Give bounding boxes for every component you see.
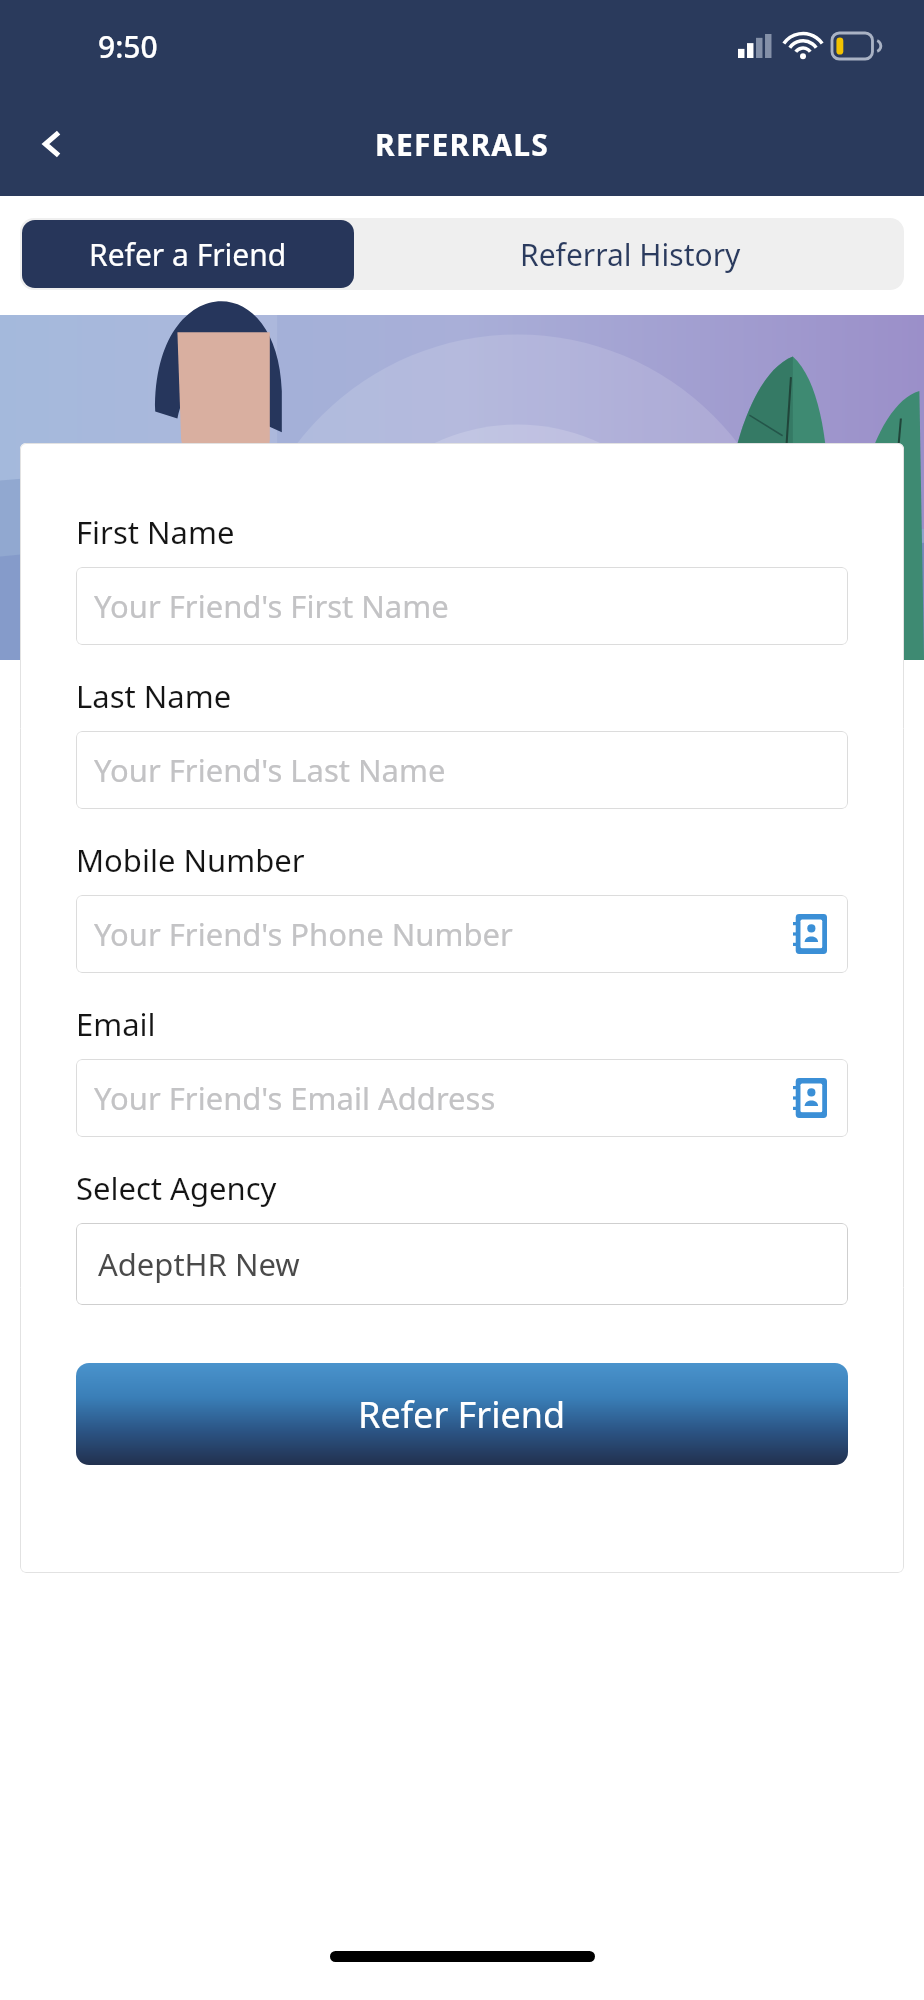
staticText: Mobile Number [76, 839, 305, 881]
button[interactable]: Refer a Friend [22, 220, 354, 288]
staticText: First Name [76, 511, 235, 553]
button[interactable]: Pick from contacts [788, 912, 832, 956]
button[interactable]: Refer Friend [76, 1363, 848, 1465]
button[interactable]: Your Friend's Phone Number [76, 895, 848, 973]
button[interactable]: Back [20, 112, 84, 176]
button[interactable]: Your Friend's First Name [76, 567, 848, 645]
staticText: Your Friend's Email Address [94, 1077, 496, 1119]
button[interactable]: AdeptHR New [76, 1223, 848, 1305]
button[interactable]: Your Friend's Email Address [76, 1059, 848, 1137]
staticText: 9:50 [98, 26, 158, 67]
staticText: AdeptHR New [98, 1243, 300, 1285]
staticText: Refer a Friend [89, 234, 287, 275]
staticText: Refer Friend [358, 1390, 566, 1439]
staticText: Referral History [520, 234, 741, 275]
button[interactable]: Pick from contacts [788, 1076, 832, 1120]
staticText: Select Agency [76, 1167, 277, 1209]
staticText: Email [76, 1003, 156, 1045]
staticText: Your Friend's Last Name [94, 749, 446, 791]
button[interactable]: Referral History [356, 218, 904, 290]
staticText: Last Name [76, 675, 232, 717]
staticText: REFERRALS [375, 124, 549, 165]
staticText: Your Friend's First Name [94, 585, 449, 627]
button[interactable]: Your Friend's Last Name [76, 731, 848, 809]
staticText: Your Friend's Phone Number [94, 913, 513, 955]
